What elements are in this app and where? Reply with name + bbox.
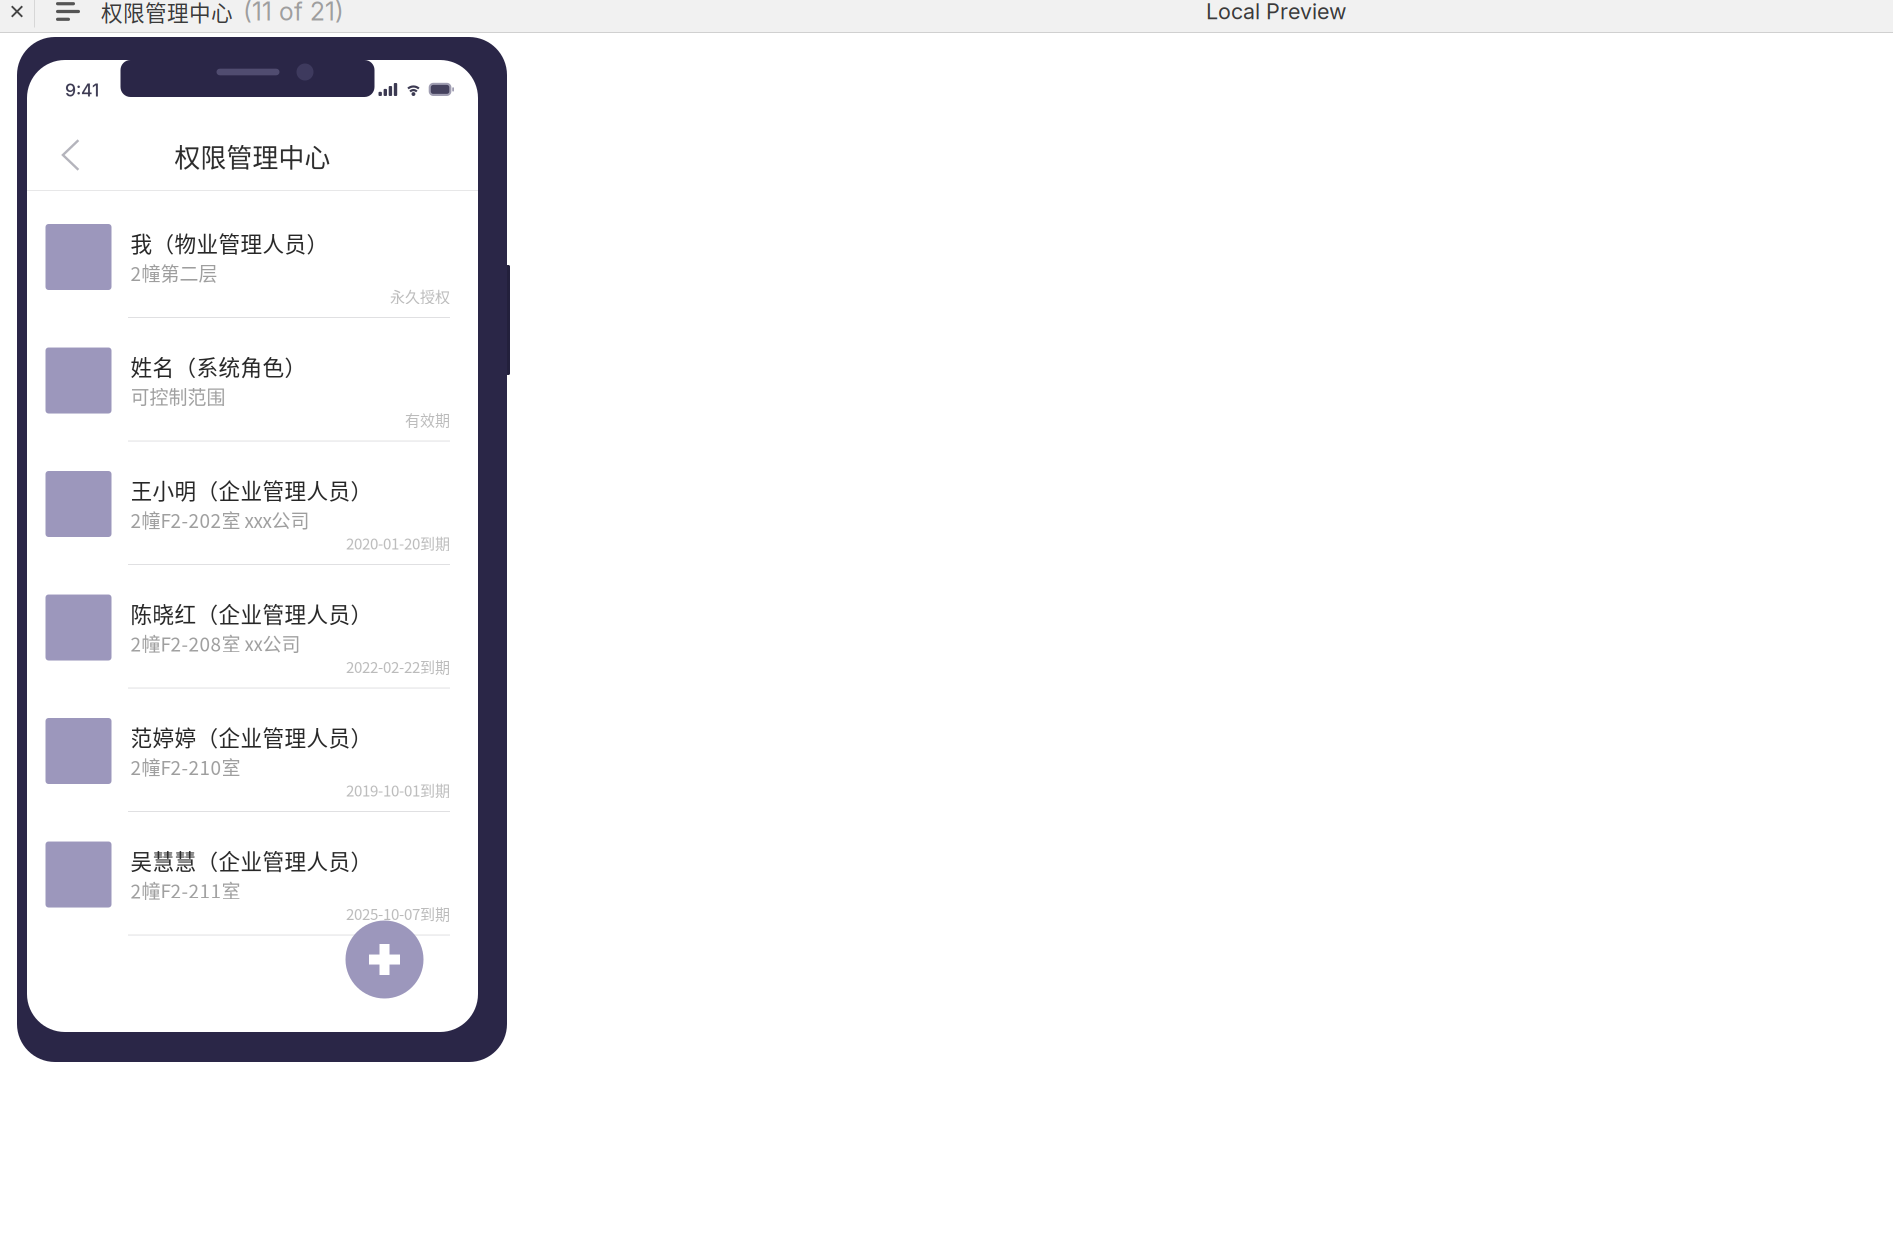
button[interactable]: 姓名（系统角色） — [27, 318, 478, 442]
button[interactable]: Close — [0, 0, 34, 23]
staticText: 我（物业管理人员） — [130, 227, 328, 258]
staticText: 姓名（系统角色） — [130, 350, 306, 382]
staticText: 范婷婷（企业管理人员） — [130, 721, 372, 752]
button[interactable]: Back — [27, 138, 98, 172]
staticText: 权限管理中心 — [101, 0, 233, 27]
button[interactable]: Add — [345, 920, 423, 998]
staticText: 权限管理中心 — [174, 137, 330, 175]
button[interactable]: Menu — [35, 0, 101, 23]
staticText: 2幢F2-208室 xx公司 — [130, 629, 300, 657]
staticText: 2幢F2-202室 xxx公司 — [130, 506, 309, 533]
staticText: 2025-10-07到期 — [346, 902, 450, 924]
staticText: 2020-01-20到期 — [346, 532, 450, 554]
button[interactable]: 王小明（企业管理人员） — [27, 442, 478, 565]
button[interactable]: 我（物业管理人员） — [27, 195, 478, 318]
staticText: 2幢F2-210室 — [130, 753, 240, 780]
staticText: 可控制范围 — [130, 382, 225, 410]
staticText: 2019-10-01到期 — [346, 779, 450, 801]
staticText: 陈晓红（企业管理人员） — [130, 597, 372, 629]
staticText: Local Preview — [1206, 0, 1346, 24]
staticText: (11 of 21) — [243, 0, 344, 26]
staticText: 吴慧慧（企业管理人员） — [130, 844, 372, 876]
button[interactable]: 吴慧慧（企业管理人员） — [27, 812, 478, 936]
staticText: 2幢F2-211室 — [130, 876, 240, 904]
staticText: 王小明（企业管理人员） — [130, 474, 372, 505]
staticText: 2幢第二层 — [130, 259, 217, 286]
button[interactable]: 范婷婷（企业管理人员） — [27, 689, 478, 812]
staticText: 9:41 — [65, 79, 99, 101]
staticText: 2022-02-22到期 — [346, 655, 450, 677]
staticText: 有效期 — [405, 408, 450, 430]
button[interactable]: 陈晓红（企业管理人员） — [27, 565, 478, 689]
staticText: 永久授权 — [390, 285, 450, 307]
